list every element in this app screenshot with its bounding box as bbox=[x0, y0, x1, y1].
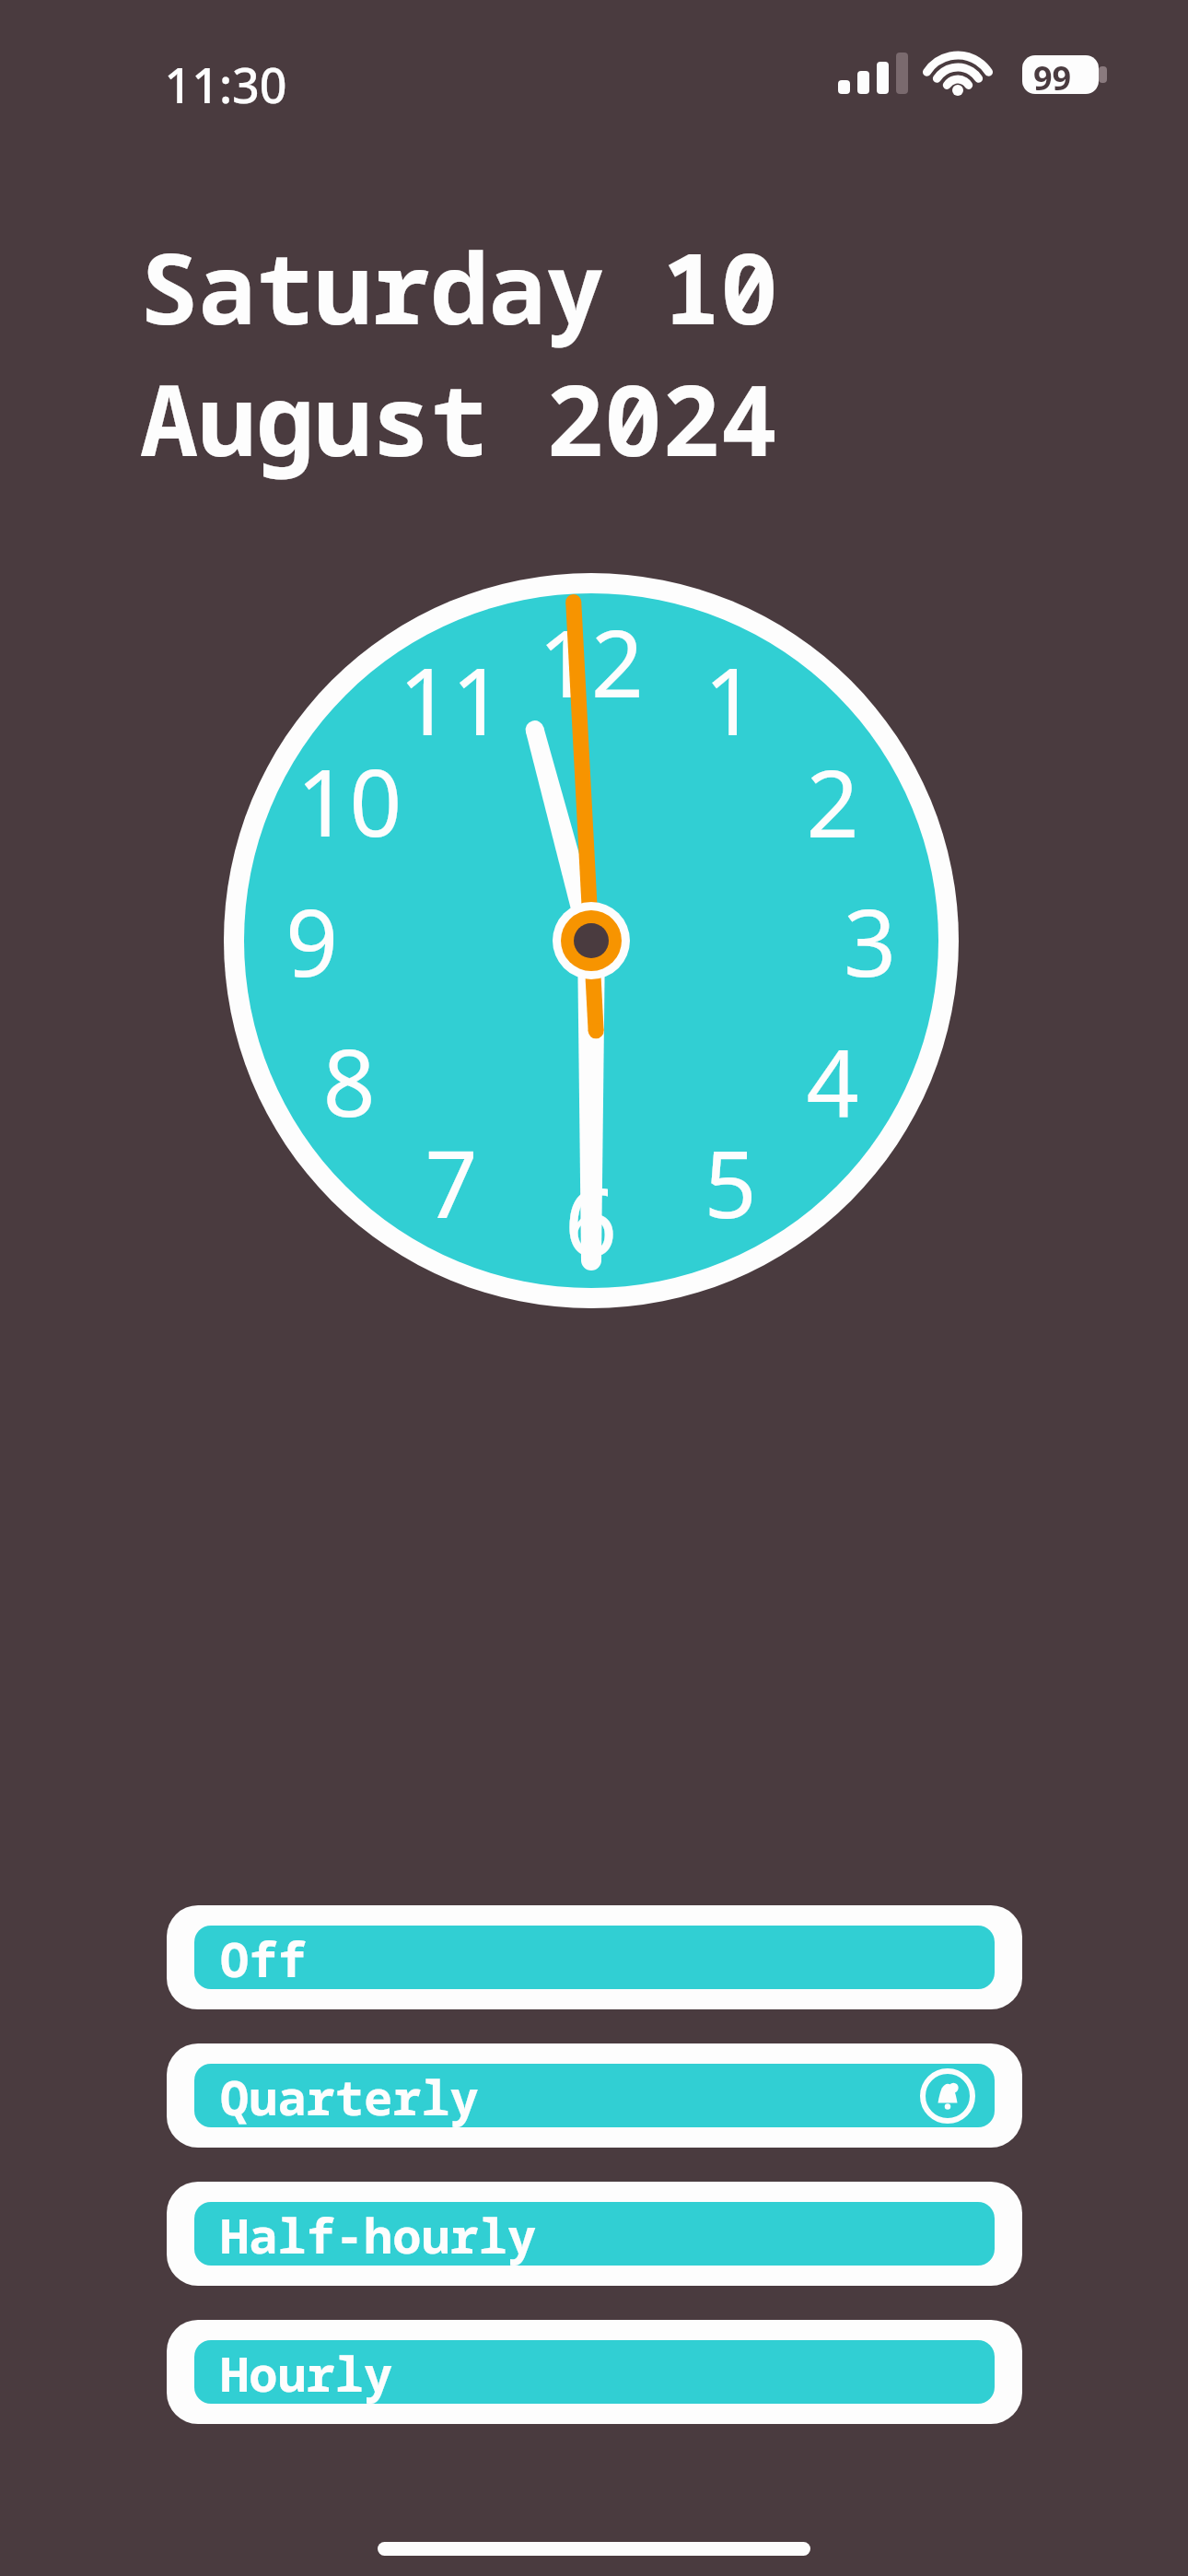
staticText: Saturday 10 bbox=[140, 221, 779, 353]
staticText: 99 bbox=[1033, 55, 1072, 100]
staticText: 11:30 bbox=[164, 52, 287, 117]
other: Alarm enabled bbox=[923, 2071, 973, 2121]
staticText: Quarterly bbox=[220, 2064, 479, 2127]
button[interactable]: Quarterly bbox=[167, 2043, 1022, 2148]
staticText: August 2024 bbox=[140, 353, 779, 485]
staticText: Half-hourly bbox=[220, 2202, 537, 2266]
button[interactable]: Off bbox=[167, 1905, 1022, 2009]
staticText: Off bbox=[220, 1926, 307, 1989]
button[interactable]: Half-hourly bbox=[167, 2182, 1022, 2286]
button[interactable]: Hourly bbox=[167, 2320, 1022, 2424]
staticText: Hourly bbox=[220, 2340, 393, 2404]
